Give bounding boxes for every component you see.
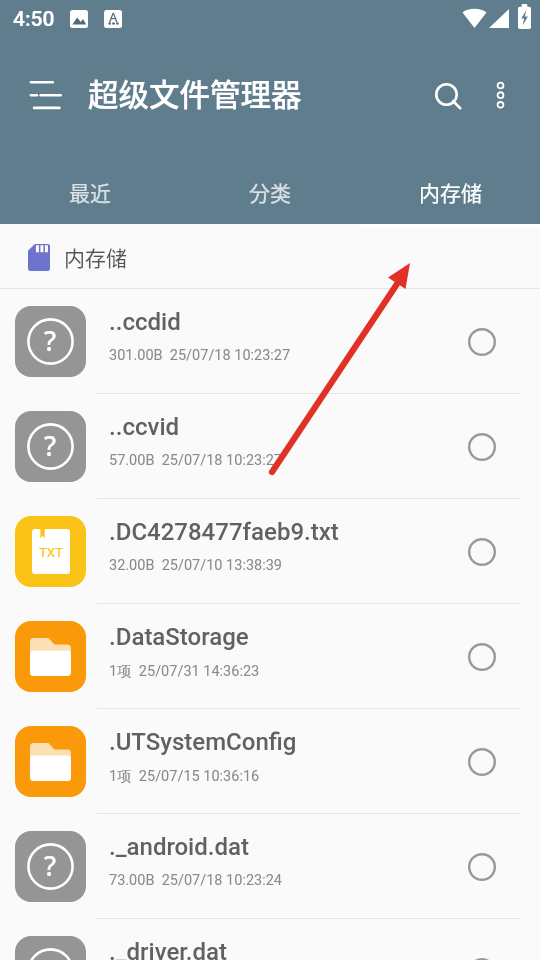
staticText: 最近 — [69, 177, 111, 207]
button[interactable]: ? — [0, 919, 540, 960]
staticText: ._driver.dat — [109, 938, 227, 960]
staticText: .DataStorage — [109, 623, 249, 651]
staticText: ? — [44, 427, 57, 464]
staticText: 超级文件管理器 — [88, 71, 302, 115]
button[interactable]: TXT — [0, 499, 540, 604]
staticText: ._android.dat — [109, 833, 250, 861]
button[interactable]: 分类 — [180, 156, 360, 228]
button[interactable]: 内存储 — [360, 156, 540, 228]
staticText: .UTSystemConfig — [109, 728, 297, 756]
button[interactable]: Menu — [21, 69, 69, 117]
staticText: 1项 25/07/31 14:36:23 — [109, 662, 260, 680]
staticText: .DC4278477faeb9.txt — [109, 518, 339, 546]
button[interactable]: ? — [0, 289, 540, 394]
staticText: 73.00B 25/07/18 10:23:24 — [109, 872, 283, 889]
button[interactable]: ? — [0, 394, 540, 499]
button[interactable]: ? — [0, 814, 540, 919]
staticText: ..ccdid — [109, 308, 181, 336]
button[interactable]: .UTSystemConfig — [0, 709, 540, 814]
staticText: 1项 25/07/15 10:36:16 — [109, 767, 260, 785]
staticText: ? — [44, 322, 57, 359]
staticText: 57.00B 25/07/18 10:23:27 — [109, 452, 283, 469]
staticText: 分类 — [249, 177, 291, 207]
staticText: TXT — [39, 545, 63, 560]
staticText: A — [109, 8, 118, 26]
staticText: 内存储 — [64, 242, 127, 272]
staticText: ..ccvid — [109, 413, 180, 441]
staticText: ? — [44, 847, 57, 884]
button[interactable]: More options — [477, 71, 524, 118]
staticText: 301.00B 25/07/18 10:23:27 — [109, 347, 291, 364]
staticText: 4:50 — [13, 7, 55, 32]
button[interactable]: .DataStorage — [0, 604, 540, 709]
staticText: 32.00B 25/07/10 13:38:39 — [109, 557, 283, 574]
staticText: 内存储 — [419, 177, 482, 207]
button[interactable]: 最近 — [0, 156, 180, 228]
button[interactable]: Search — [425, 73, 475, 123]
